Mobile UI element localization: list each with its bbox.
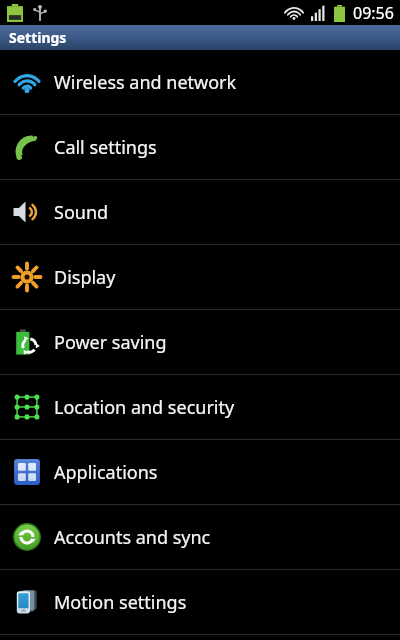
button[interactable]: Location and security bbox=[0, 375, 400, 439]
staticText: Accounts and sync bbox=[54, 525, 211, 550]
button[interactable]: Accounts and sync bbox=[0, 505, 400, 569]
staticText: Settings bbox=[9, 28, 67, 47]
button[interactable]: Motion settings bbox=[0, 570, 400, 634]
button[interactable]: Display bbox=[0, 245, 400, 309]
staticText: Sound bbox=[54, 200, 109, 225]
staticText: Motion settings bbox=[54, 590, 187, 615]
staticText: 09:56 bbox=[353, 2, 394, 24]
button[interactable]: Sound bbox=[0, 180, 400, 244]
staticText: Applications bbox=[54, 460, 158, 485]
staticText: Wireless and network bbox=[54, 70, 237, 95]
staticText: Location and security bbox=[54, 395, 235, 420]
button[interactable]: Power saving bbox=[0, 310, 400, 374]
staticText: Call settings bbox=[54, 135, 157, 160]
staticText: Power saving bbox=[54, 330, 167, 355]
button[interactable]: Applications bbox=[0, 440, 400, 504]
staticText: Display bbox=[54, 265, 116, 290]
button[interactable]: Call settings bbox=[0, 115, 400, 179]
button[interactable]: Wireless and network bbox=[0, 50, 400, 114]
